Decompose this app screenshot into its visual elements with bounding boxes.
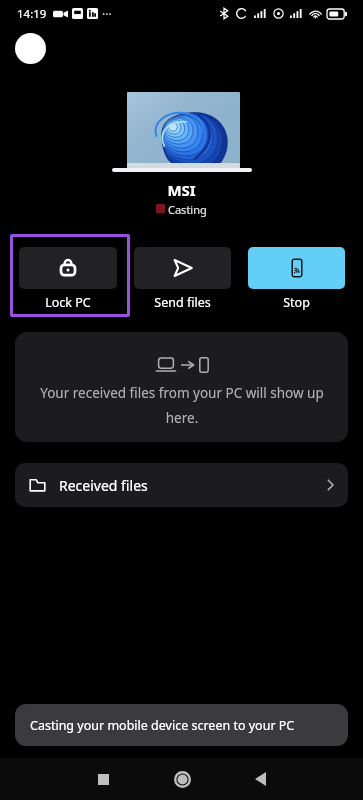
button[interactable]: Recents bbox=[79, 758, 127, 800]
button[interactable]: Received files bbox=[15, 463, 348, 507]
button[interactable]: Send files bbox=[134, 247, 231, 311]
button[interactable]: Back bbox=[236, 758, 284, 800]
staticText: Send files bbox=[154, 294, 211, 311]
staticText: Stop bbox=[283, 294, 310, 311]
button[interactable]: Profile bbox=[15, 33, 46, 64]
staticText: Received files bbox=[59, 476, 148, 495]
staticText: Your received files from your PC will sh… bbox=[36, 384, 328, 427]
staticText: Casting bbox=[168, 202, 207, 217]
staticText: 14:19 bbox=[17, 6, 47, 22]
staticText: Lock PC bbox=[45, 294, 91, 311]
button[interactable]: Lock PC focus bbox=[10, 234, 130, 317]
button[interactable]: Lock PC bbox=[19, 247, 117, 311]
staticText: Casting your mobile device screen to you… bbox=[30, 717, 295, 734]
button[interactable]: Stop bbox=[248, 247, 345, 311]
button[interactable]: Home bbox=[158, 758, 206, 800]
staticText: MSI bbox=[0, 180, 363, 200]
staticText: ··· bbox=[102, 6, 112, 22]
